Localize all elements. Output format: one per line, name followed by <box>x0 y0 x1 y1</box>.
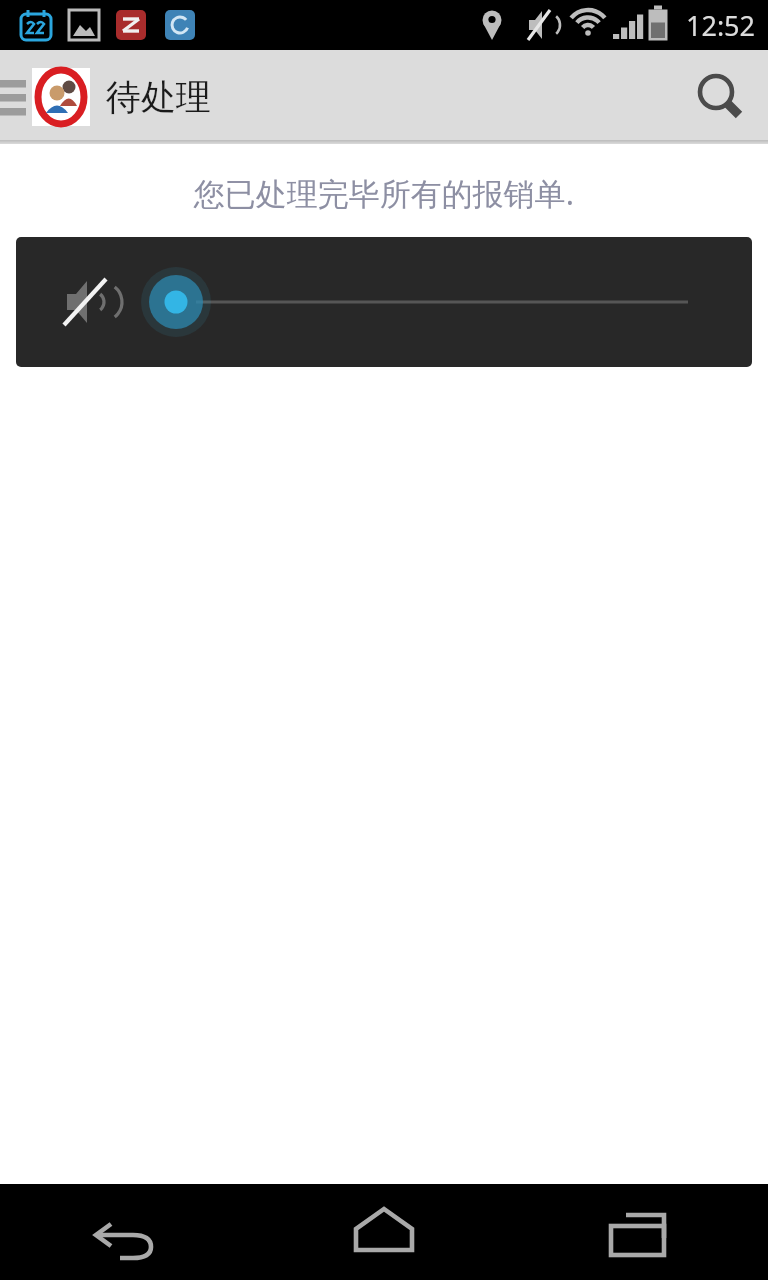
staticText: 待处理 <box>106 75 211 119</box>
button[interactable]: Search <box>674 50 768 144</box>
button[interactable]: App icon <box>30 66 92 128</box>
button[interactable]: Recent apps <box>512 1184 768 1280</box>
button[interactable] <box>16 237 752 367</box>
button[interactable]: Home <box>256 1184 512 1280</box>
button[interactable]: Navigation menu <box>0 50 28 144</box>
button[interactable]: Back <box>0 1184 256 1280</box>
staticText: 12:52 <box>686 7 756 44</box>
staticText: 您已处理完毕所有的报销单. <box>0 172 768 214</box>
